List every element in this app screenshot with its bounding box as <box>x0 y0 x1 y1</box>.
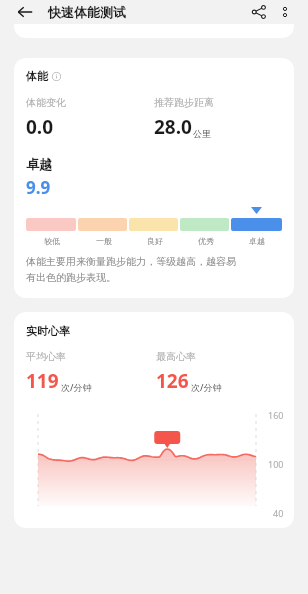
button[interactable]: Share <box>246 0 272 24</box>
staticText: 体能主要用来衡量跑步能力，等级越高，越容易 有出色的跑步表现。 <box>26 255 236 284</box>
button[interactable]: 实时心率 <box>14 312 294 528</box>
button[interactable]: More options <box>272 0 298 24</box>
staticText: 次/分钟 <box>61 381 92 393</box>
staticText: 推荐跑步距离 <box>154 96 214 109</box>
staticText: 40 <box>273 507 284 518</box>
staticText: 体能 <box>26 69 48 83</box>
staticText: 160 <box>268 409 284 421</box>
staticText: 实时心率 <box>26 324 70 338</box>
staticText: 公里 <box>193 128 211 139</box>
staticText: 次/分钟 <box>191 381 222 393</box>
staticText: 良好 <box>147 236 163 246</box>
staticText: 126 <box>156 368 189 394</box>
staticText: 最高心率 <box>156 350 196 363</box>
button[interactable]: Back <box>12 0 38 24</box>
staticText: 卓越 <box>26 156 52 172</box>
button[interactable]: 体能 <box>14 58 294 298</box>
staticText: 较低 <box>44 236 60 246</box>
staticText: 优秀 <box>198 236 214 246</box>
staticText: 一般 <box>96 236 112 246</box>
staticText: 9.9 <box>26 176 51 199</box>
staticText: 体能变化 <box>26 96 66 109</box>
staticText: 0.0 <box>26 114 54 140</box>
staticText: 119 <box>26 368 59 394</box>
staticText: 100 <box>268 458 284 470</box>
staticText: 快速体能测试 <box>48 4 126 20</box>
staticText: 28.0 <box>154 114 192 140</box>
staticText: 平均心率 <box>26 350 66 363</box>
staticText: 卓越 <box>249 236 265 246</box>
